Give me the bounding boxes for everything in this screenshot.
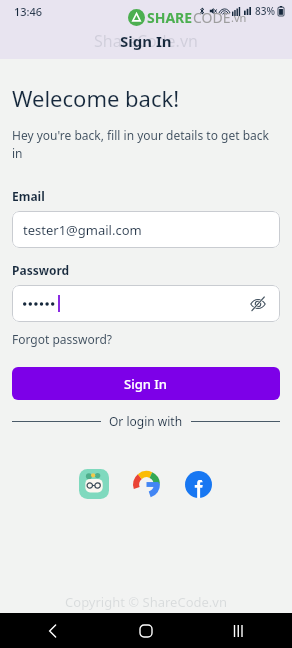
button[interactable]: Sign in with Google [131, 469, 161, 499]
button[interactable]: Sign in with Facebook [183, 469, 213, 499]
button[interactable]: tester1@gmail.com [12, 211, 280, 248]
button[interactable]: Home [133, 618, 159, 644]
staticText: Email [12, 188, 45, 204]
staticText: Copyright © ShareCode.vn [65, 593, 227, 611]
staticText: CODE [193, 8, 231, 27]
button[interactable]: Recent apps [226, 618, 252, 644]
staticText: Sign In [120, 31, 172, 51]
staticText: SHARE [147, 8, 193, 27]
button[interactable]: Show password [247, 293, 269, 315]
staticText: tester1@gmail.com [23, 221, 142, 239]
staticText: Welecome back! [12, 83, 180, 113]
staticText: Hey you're back, fill in your details to… [12, 127, 280, 162]
staticText: 13:46 [14, 4, 43, 19]
staticText: Or login with [109, 413, 183, 429]
staticText: Password [12, 262, 70, 278]
staticText: Sign In [124, 375, 168, 393]
staticText: ShareCode.vn [94, 30, 198, 52]
staticText: 83% [255, 4, 275, 18]
staticText: Forgot password? [12, 331, 113, 347]
button[interactable]: Sign in with app account [79, 469, 109, 499]
staticText: .vn [231, 10, 247, 25]
button[interactable]: Show password [12, 285, 280, 322]
button[interactable]: Forgot password? [12, 331, 113, 347]
button[interactable]: Back [40, 618, 66, 644]
button[interactable]: Sign In [12, 367, 280, 400]
